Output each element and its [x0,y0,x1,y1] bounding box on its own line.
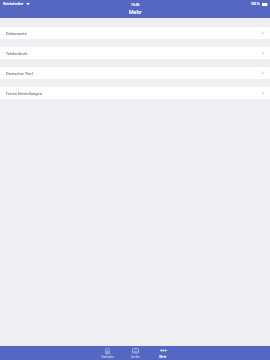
staticText: Dokumente [6,31,27,36]
button[interactable]: Archiv [121,346,149,360]
button[interactable]: Ferien Einstellungen [0,87,270,99]
button[interactable]: Deutscher Titel [0,67,270,79]
button[interactable]: Telefonbuch [0,47,270,59]
staticText: Telefonbuch [6,51,28,56]
button[interactable]: Mehr [149,346,177,360]
staticText: Deutscher Titel [6,71,33,76]
staticText: 100 % [251,2,260,6]
button[interactable]: Startseite [93,346,121,360]
staticText: 13:46 [131,2,140,6]
staticText: Archiv [131,355,140,359]
staticText: Startseite [101,355,114,359]
staticText: Mehr [159,355,167,359]
staticText: Mehr [129,9,142,16]
staticText: Netzbetreiber [3,2,24,6]
button[interactable]: Dokumente [0,27,270,39]
staticText: Ferien Einstellungen [6,91,43,96]
